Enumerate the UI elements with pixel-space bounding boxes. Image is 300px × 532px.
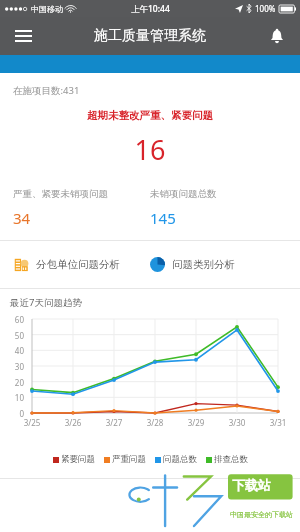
staticText: 问题类别分析 (172, 258, 235, 271)
staticText: 145 (150, 208, 176, 228)
staticText: 34 (13, 208, 31, 228)
staticText: 排查总数 (214, 454, 248, 465)
staticText: 中国移动 (31, 4, 63, 14)
staticText: 超期未整改严重、紧要问题 (0, 109, 300, 122)
button[interactable]: 问题类别分析 (150, 241, 300, 288)
staticText: 3/26 (59, 417, 87, 428)
staticText: 3/29 (182, 417, 210, 428)
staticText: 3/31 (264, 417, 292, 428)
staticText: 未销项问题总数 (150, 188, 217, 200)
button[interactable]: Menu (6, 19, 40, 53)
staticText: 3/28 (141, 417, 169, 428)
staticText: 最近7天问题趋势 (10, 296, 82, 309)
staticText: 施工质量管理系统 (94, 27, 206, 45)
staticText: 在施项目数:431 (13, 84, 80, 97)
staticText: 50 (0, 330, 24, 341)
staticText: 10 (0, 392, 24, 403)
staticText: 30 (0, 361, 24, 372)
staticText: 40 (0, 345, 24, 356)
staticText: 上午10:44 (131, 3, 170, 15)
staticText: 分包单位问题分析 (36, 258, 120, 271)
staticText: 100% (255, 3, 276, 14)
staticText: 3/30 (223, 417, 251, 428)
staticText: 0 (0, 408, 24, 419)
button[interactable]: Notifications (260, 19, 294, 53)
staticText: 紧要问题 (61, 454, 95, 465)
staticText: 中国最安全的下载站 (230, 510, 293, 519)
staticText: 3/25 (18, 417, 46, 428)
staticText: 3/27 (100, 417, 128, 428)
staticText: 60 (0, 314, 24, 325)
staticText: 下载站 (232, 477, 271, 493)
staticText: 20 (0, 377, 24, 388)
staticText: 16 (0, 131, 300, 168)
staticText: 问题总数 (163, 454, 197, 465)
staticText: 严重问题 (112, 454, 146, 465)
button[interactable]: 分包单位问题分析 (0, 241, 150, 288)
staticText: 严重、紧要未销项问题 (13, 188, 108, 200)
